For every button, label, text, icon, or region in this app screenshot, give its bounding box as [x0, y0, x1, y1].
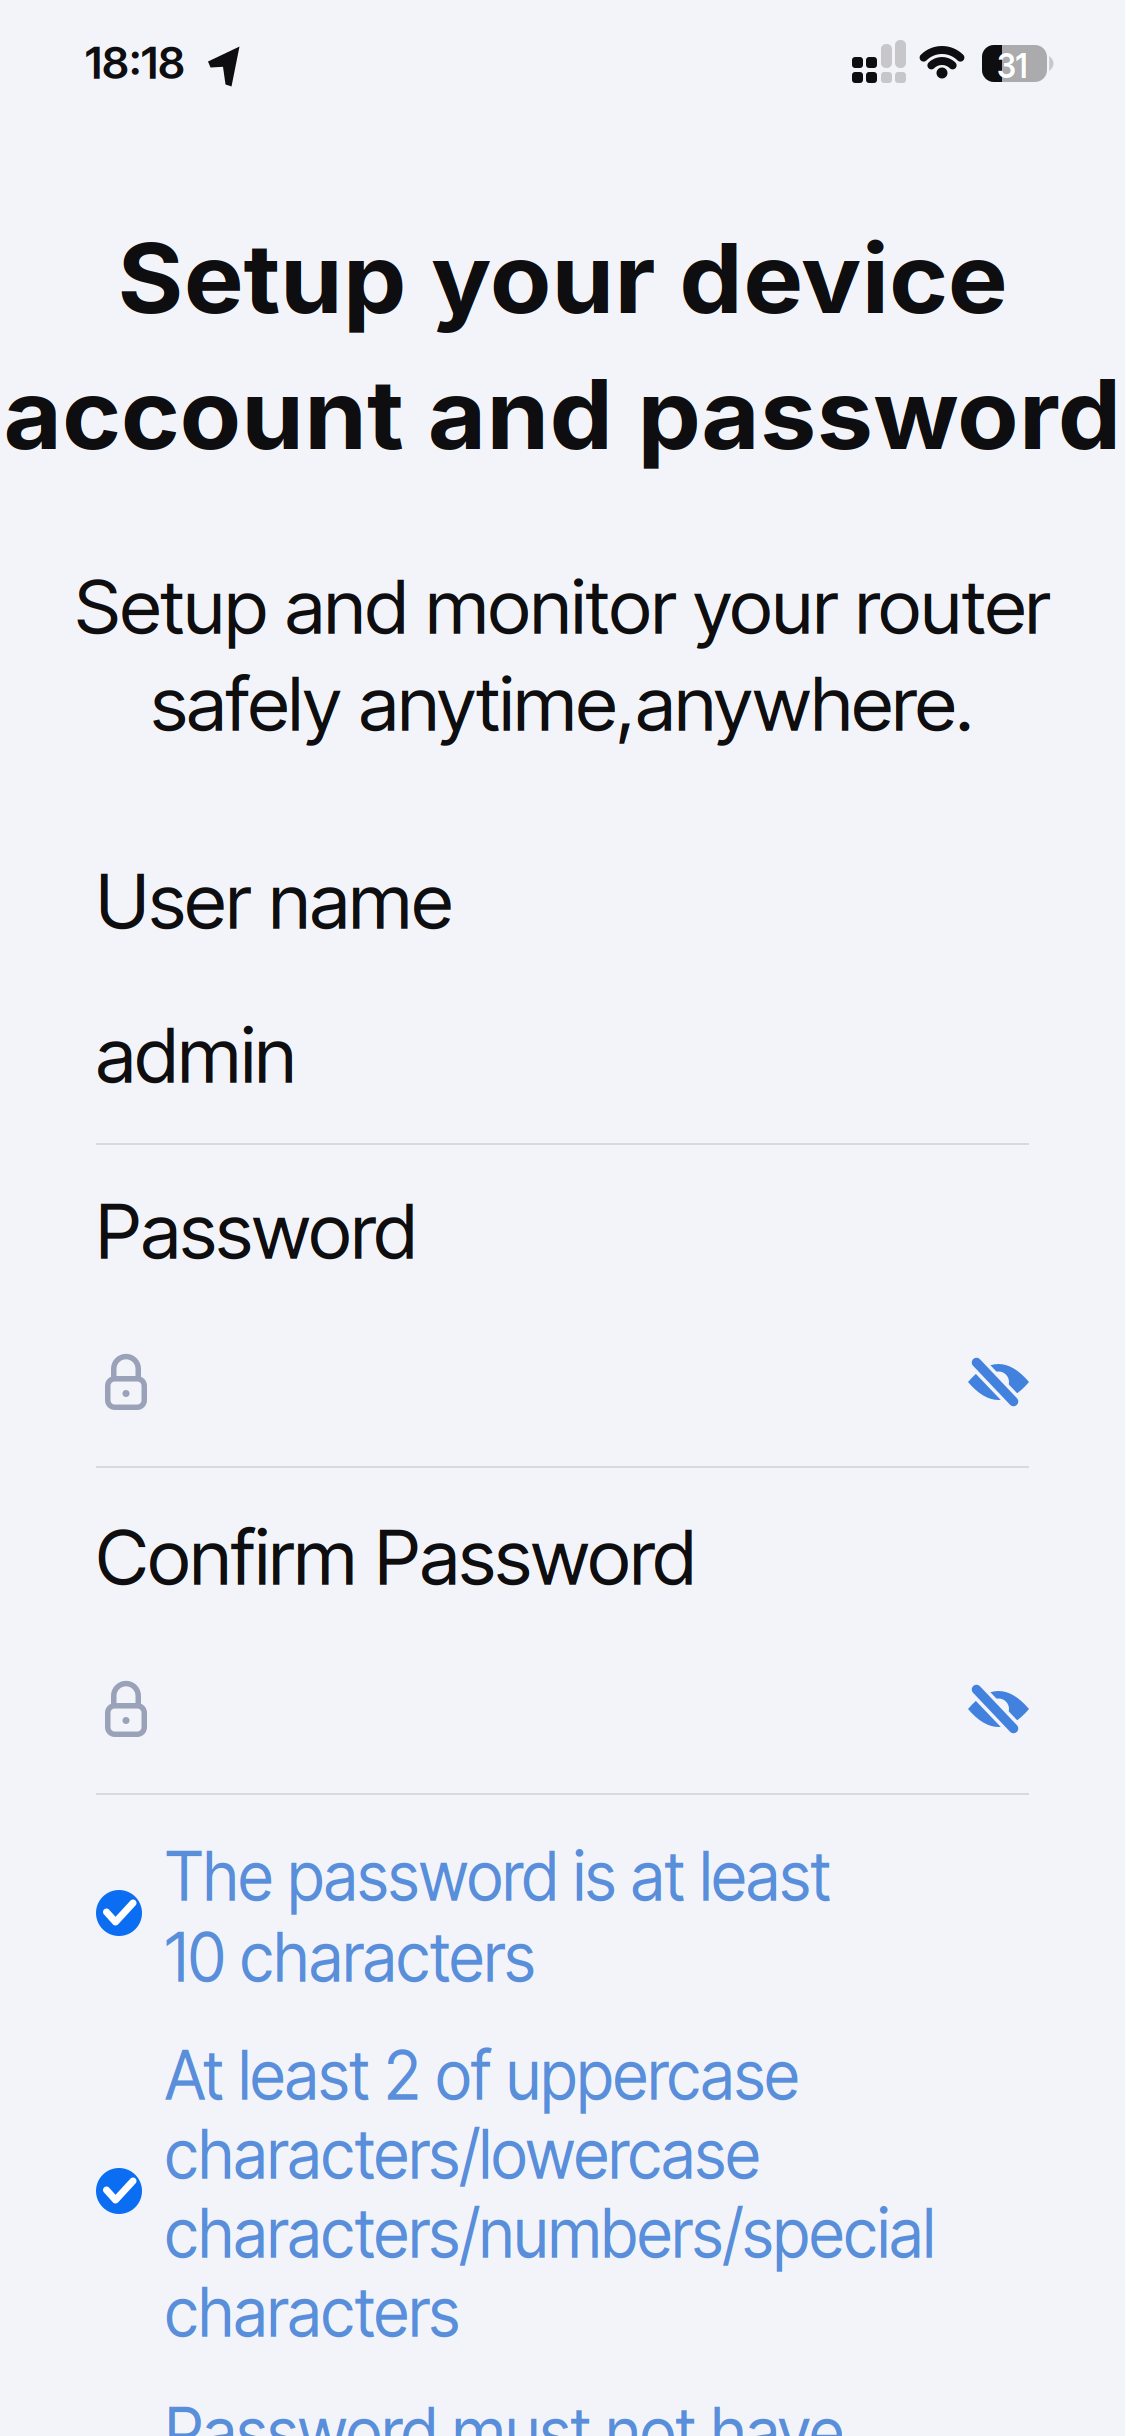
staticText: Setup and monitor your router	[87, 562, 1038, 651]
staticText: The password is at least	[165, 1834, 881, 1917]
button[interactable]: Password	[96, 1354, 926, 1434]
staticText: Setup your device	[138, 220, 987, 336]
staticText: 10 characters	[165, 1915, 563, 1998]
button[interactable]: Show password	[963, 1351, 1034, 1413]
staticText: 31	[997, 44, 1031, 86]
staticText: admin	[96, 1009, 296, 1101]
staticText: characters/numbers/special	[165, 2191, 993, 2274]
button[interactable]: Show confirm password	[963, 1678, 1034, 1740]
staticText: Confirm Password	[96, 1511, 696, 1603]
staticText: At least 2 of uppercase	[165, 2033, 847, 2116]
button[interactable]: Confirm Password	[96, 1681, 926, 1761]
staticText: characters	[165, 2270, 482, 2353]
staticText: Password must not have	[165, 2390, 895, 2436]
staticText: safely anytime,anywhere.	[161, 659, 964, 748]
staticText: 18:18	[85, 36, 185, 89]
staticText: characters/lowercase	[165, 2112, 805, 2195]
staticText: User name	[96, 855, 453, 947]
staticText: account and password	[29, 356, 1096, 472]
button[interactable]: admin	[96, 1009, 1029, 1129]
staticText: Password	[96, 1185, 417, 1277]
